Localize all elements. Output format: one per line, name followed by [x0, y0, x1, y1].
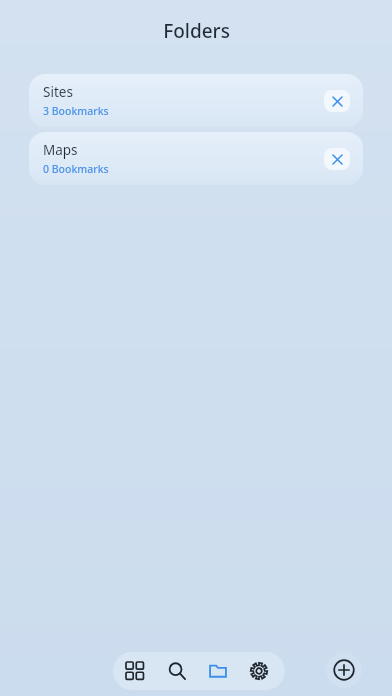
button[interactable]: Settings: [238, 652, 279, 690]
button[interactable]: Add folder: [326, 652, 362, 688]
button[interactable]: Folders: [197, 652, 238, 690]
button[interactable]: Delete Sites: [324, 90, 350, 112]
button[interactable]: Sites: [29, 74, 363, 127]
button[interactable]: Dashboard: [113, 652, 156, 690]
staticText: 3 Bookmarks: [43, 104, 109, 118]
staticText: Sites: [43, 83, 73, 101]
staticText: Maps: [43, 141, 78, 159]
button[interactable]: Maps: [29, 132, 363, 185]
button[interactable]: Search: [156, 652, 197, 690]
staticText: 0 Bookmarks: [43, 162, 109, 176]
staticText: Folders: [163, 18, 230, 44]
button[interactable]: Delete Maps: [324, 148, 350, 170]
